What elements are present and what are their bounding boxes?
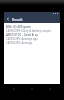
staticText: CATEGORY: Dairy & bakery recipes: [6, 29, 51, 33]
staticText: CATEGORY: Average: [6, 41, 33, 45]
staticText: ABC0 0101 - Cook & cy: [6, 33, 38, 37]
staticText: CATEGORY: Average age: [6, 37, 38, 41]
button[interactable]: Back: [4, 15, 12, 23]
button[interactable]: Back: [12, 87, 16, 91]
button[interactable]: Home: [30, 87, 34, 91]
staticText: Milk (3) 400 gram: [6, 25, 31, 29]
staticText: Result: [12, 17, 23, 22]
button[interactable]: Recents: [48, 87, 52, 91]
